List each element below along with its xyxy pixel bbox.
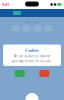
staticText: Meeting xyxy=(26,20,38,23)
staticText: your experience on our site. xyxy=(12,59,52,63)
button[interactable] xyxy=(15,70,25,77)
staticText: 9:41 xyxy=(2,2,9,7)
staticText: Cookies xyxy=(25,47,39,53)
staticText: We use cookies to improve xyxy=(13,54,50,58)
button[interactable] xyxy=(39,70,49,77)
